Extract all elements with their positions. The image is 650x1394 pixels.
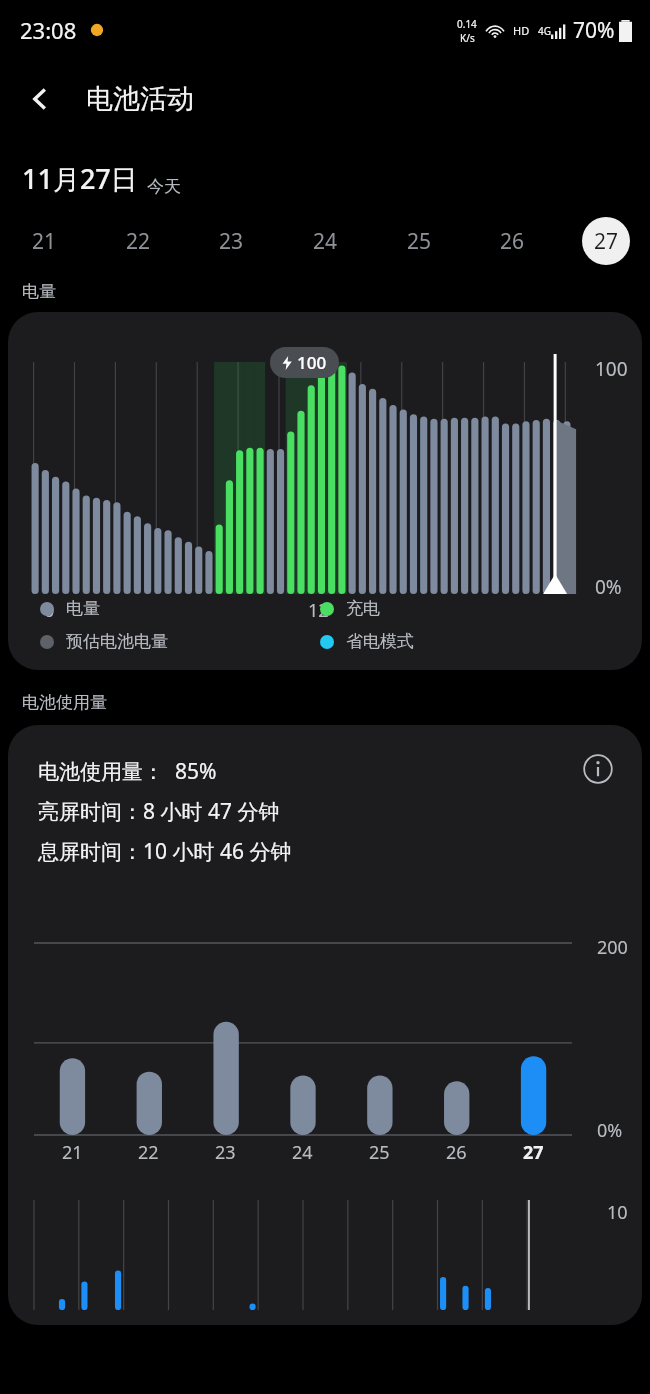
staticText: 预估电池电量 bbox=[66, 631, 168, 652]
staticText: 200 bbox=[597, 935, 628, 960]
button[interactable]: Back bbox=[14, 72, 68, 126]
staticText: 省电模式 bbox=[346, 631, 414, 652]
staticText: 22 bbox=[138, 1140, 159, 1165]
staticText: 电量 bbox=[22, 281, 56, 302]
button[interactable]: 电池使用量： 85% bbox=[8, 725, 642, 1325]
staticText: 10 bbox=[607, 1200, 628, 1225]
staticText: 电池使用量： 85% bbox=[38, 757, 217, 786]
button[interactable]: 25 bbox=[395, 217, 443, 265]
staticText: 21 bbox=[62, 1140, 83, 1165]
staticText: 23 bbox=[219, 227, 244, 256]
staticText: 今天 bbox=[147, 176, 181, 197]
staticText: 25 bbox=[407, 227, 432, 256]
staticText: 23:08 bbox=[20, 15, 77, 45]
staticText: 27 bbox=[594, 227, 619, 256]
staticText: 70% bbox=[573, 16, 615, 45]
staticText: 100 bbox=[595, 356, 628, 382]
staticText: 21 bbox=[32, 227, 57, 256]
staticText: 24 bbox=[292, 1140, 313, 1165]
staticText: 0 bbox=[44, 598, 55, 623]
staticText: 电量 bbox=[66, 598, 100, 619]
staticText: 电池使用量 bbox=[22, 692, 107, 713]
staticText: 25 bbox=[369, 1140, 390, 1165]
staticText: HD bbox=[513, 23, 530, 38]
staticText: 4G bbox=[538, 24, 551, 38]
button[interactable]: 26 bbox=[488, 217, 536, 265]
staticText: 电池活动 bbox=[86, 82, 194, 116]
button[interactable]: 23 bbox=[207, 217, 255, 265]
staticText: 亮屏时间：8 小时 47 分钟 bbox=[38, 797, 280, 826]
button[interactable]: 100 bbox=[8, 312, 642, 670]
staticText: 22 bbox=[126, 227, 151, 256]
staticText: 息屏时间：10 小时 46 分钟 bbox=[38, 837, 292, 866]
staticText: 充电 bbox=[346, 598, 380, 619]
staticText: 12 bbox=[308, 598, 329, 623]
staticText: 11月27日 bbox=[22, 160, 138, 197]
button[interactable]: 22 bbox=[114, 217, 162, 265]
staticText: 0% bbox=[597, 1118, 623, 1143]
button[interactable]: 21 bbox=[20, 217, 68, 265]
staticText: 100 bbox=[297, 351, 327, 374]
staticText: K/s bbox=[460, 31, 475, 45]
button[interactable]: 24 bbox=[301, 217, 349, 265]
staticText: 0.14 bbox=[457, 17, 477, 31]
staticText: 27 bbox=[523, 1140, 544, 1165]
staticText: 26 bbox=[500, 227, 525, 256]
staticText: 0% bbox=[595, 574, 622, 600]
button[interactable]: 27 bbox=[582, 217, 630, 265]
staticText: 24 bbox=[313, 227, 338, 256]
staticText: 23 bbox=[215, 1140, 236, 1165]
button[interactable]: Info bbox=[576, 747, 620, 791]
staticText: 26 bbox=[446, 1140, 467, 1165]
